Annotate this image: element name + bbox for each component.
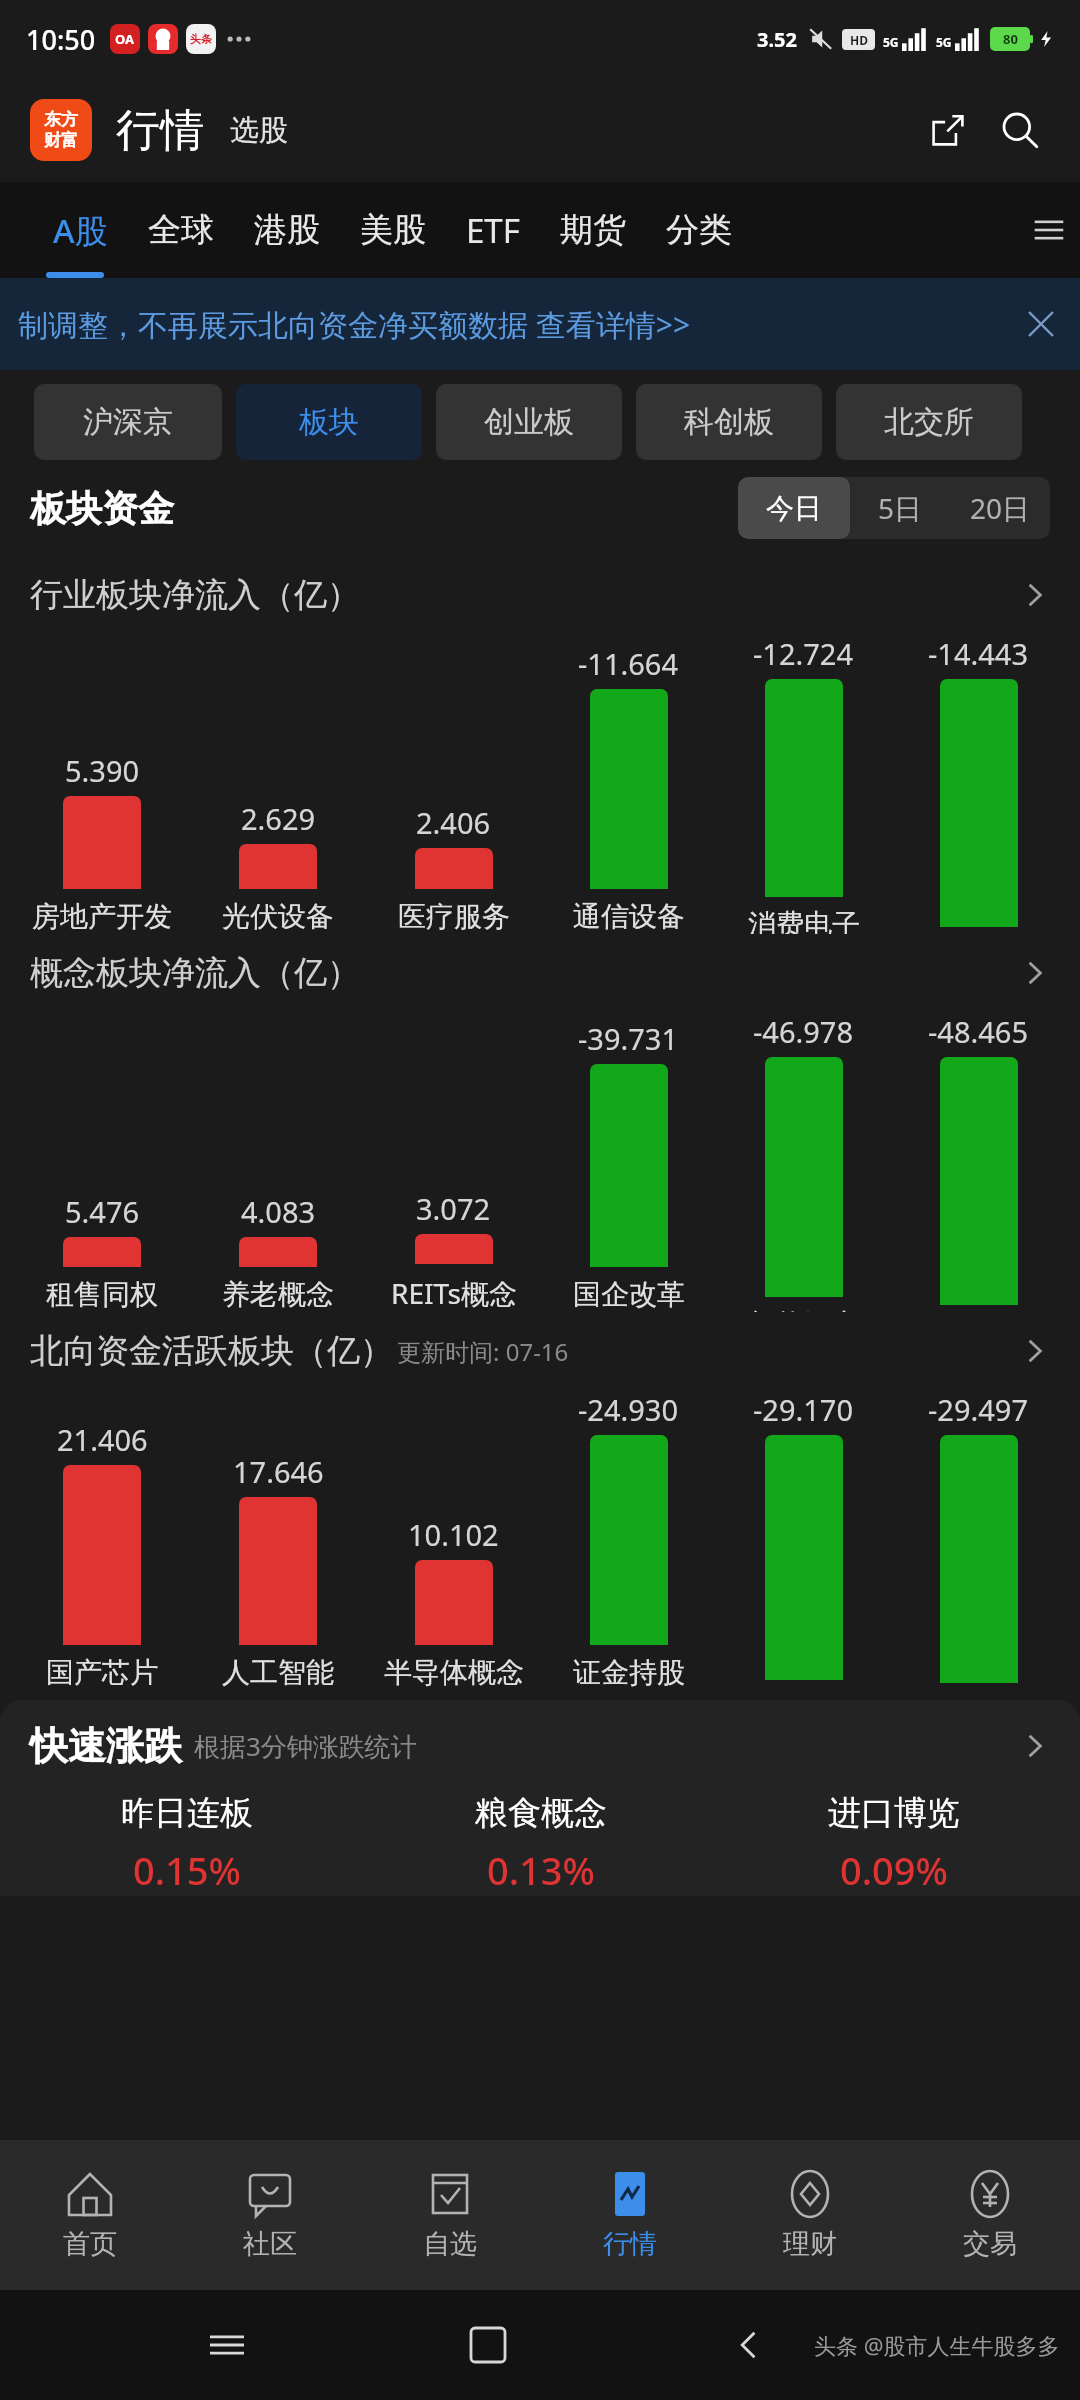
button[interactable]: 行情 (116, 103, 204, 158)
button[interactable]: Recent apps (192, 2310, 262, 2380)
button[interactable]: 美股 (343, 201, 443, 259)
button[interactable]: -12.724 (716, 634, 891, 934)
staticText: 全球 (148, 209, 214, 251)
staticText: 板块 (299, 403, 359, 441)
staticText: 理财 (783, 2227, 837, 2261)
button[interactable]: 5.390 (14, 751, 190, 934)
staticText: 5.390 (65, 751, 140, 790)
button[interactable]: -29.497 (891, 1390, 1066, 1690)
button[interactable]: 首页 (0, 2140, 180, 2290)
button[interactable]: 进口博览 (717, 1792, 1070, 1896)
button[interactable]: -11.664 (541, 644, 716, 934)
staticText: -11.664 (578, 644, 679, 683)
staticText: 概念板块净流入（亿） (30, 952, 360, 994)
button[interactable]: 板块资金 (30, 486, 174, 531)
button[interactable]: -46.978 (716, 1012, 891, 1312)
button[interactable]: 行业板块净流入（亿） (30, 556, 1050, 634)
button[interactable]: 5日 (850, 477, 950, 539)
staticText: 新能源车 (748, 1307, 860, 1312)
staticText: 根据3分钟涨跌统计 (194, 1728, 417, 1764)
button[interactable]: 沪深京 (34, 384, 222, 460)
staticText: 首页 (63, 2227, 117, 2261)
button[interactable]: 创业板 (436, 384, 622, 460)
button[interactable]: 北交所 (836, 384, 1022, 460)
staticText: 5日 (878, 489, 923, 527)
button[interactable]: Search (990, 100, 1050, 160)
button[interactable]: Close banner (1020, 303, 1062, 345)
button[interactable]: 社区 (180, 2140, 360, 2290)
staticText: 人工智能 (222, 1655, 334, 1690)
button[interactable]: 理财 (720, 2140, 900, 2290)
staticText: 头条 @股市人生牛股多多 (814, 2330, 1060, 2360)
button[interactable]: 制调整，不再展示北向资金净买额数据 查看详情>> (0, 278, 1080, 370)
staticText: 5G (936, 34, 952, 50)
button[interactable]: -39.731 (541, 1019, 716, 1312)
staticText: 5.476 (65, 1192, 140, 1231)
staticText: 北交所 (884, 403, 974, 441)
button[interactable]: -14.443 (891, 634, 1066, 934)
button[interactable]: -24.930 (541, 1390, 716, 1690)
staticText: 光伏设备 (222, 899, 334, 934)
staticText: -14.443 (928, 634, 1029, 673)
button[interactable]: 2.629 (190, 799, 366, 934)
button[interactable]: 快速涨跌 (30, 1700, 1050, 1792)
button[interactable]: 10.102 (366, 1515, 541, 1690)
staticText: 交易 (963, 2227, 1017, 2261)
button[interactable]: 板块 (236, 384, 422, 460)
staticText: 3.072 (416, 1189, 491, 1228)
button[interactable]: 科创板 (636, 384, 822, 460)
button[interactable]: 自选 (360, 2140, 540, 2290)
button[interactable]: 3.072 (366, 1189, 541, 1312)
button[interactable]: 北向资金活跃板块（亿） (30, 1312, 1050, 1390)
staticText: 半导体概念 (384, 1655, 524, 1690)
staticText: 进口博览 (828, 1792, 960, 1834)
staticText: 80 (1003, 30, 1018, 48)
button[interactable]: 今日 (738, 477, 850, 539)
button[interactable]: 粮食概念 (364, 1792, 717, 1896)
staticText: -29.170 (753, 1390, 854, 1429)
button[interactable]: 期货 (543, 201, 643, 259)
button[interactable]: 东方 (30, 99, 92, 161)
button[interactable]: Share (918, 100, 978, 160)
staticText: 制调整，不再展示北向资金净买额数据 查看详情>> (18, 304, 691, 345)
button[interactable]: 交易 (900, 2140, 1080, 2290)
button[interactable]: 4.083 (190, 1192, 366, 1312)
staticText: -46.978 (753, 1012, 854, 1051)
button[interactable]: A股 (36, 200, 125, 261)
button[interactable]: 2.406 (366, 803, 541, 934)
button[interactable]: ETF (449, 200, 537, 261)
staticText: 10:50 (26, 21, 96, 58)
button[interactable]: Home (453, 2310, 523, 2380)
button[interactable]: 行情 (540, 2140, 720, 2290)
button[interactable]: Back (714, 2310, 784, 2380)
button[interactable]: 分类 (649, 201, 749, 259)
staticText: 房地产开发 (32, 899, 172, 934)
button[interactable]: 17.646 (190, 1452, 366, 1690)
staticText: 港股 (254, 209, 320, 251)
button[interactable]: 20日 (950, 477, 1050, 539)
staticText: 科创板 (684, 403, 774, 441)
button[interactable]: 概念板块净流入（亿） (30, 934, 1050, 1012)
button[interactable]: -48.465 (891, 1012, 1066, 1312)
staticText: 创业板 (484, 403, 574, 441)
button[interactable]: More tabs (1018, 182, 1080, 278)
staticText: -24.930 (578, 1390, 679, 1429)
button[interactable]: -29.170 (716, 1390, 891, 1690)
button[interactable]: 选股 (230, 112, 288, 149)
staticText: 期货 (560, 209, 626, 251)
button[interactable]: 港股 (237, 201, 337, 259)
button[interactable]: 昨日连板 (10, 1792, 364, 1896)
staticText: 快速涨跌 (30, 1722, 182, 1770)
staticText: 0.09% (840, 1844, 948, 1896)
staticText: 消费电子 (748, 907, 860, 934)
staticText: 沪深京 (83, 403, 173, 441)
button[interactable]: 全球 (131, 201, 231, 259)
staticText: 0.15% (133, 1844, 241, 1896)
staticText: 20日 (970, 489, 1031, 527)
button[interactable]: 21.406 (14, 1420, 190, 1690)
staticText: -12.724 (753, 634, 854, 673)
staticText: 4.083 (241, 1192, 316, 1231)
button[interactable]: 5.476 (14, 1192, 190, 1312)
staticText: 昨日连板 (121, 1792, 253, 1834)
staticText: 5G (883, 34, 899, 50)
